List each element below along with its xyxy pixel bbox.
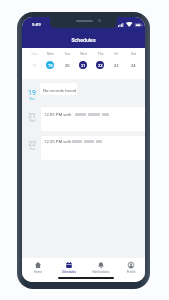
staticText: 19 — [48, 63, 53, 68]
button[interactable]: Wed — [75, 49, 92, 77]
button[interactable]: Notifications — [86, 258, 116, 282]
staticText: 19 — [28, 89, 36, 97]
staticText: 18 — [32, 63, 37, 68]
button[interactable]: Profile — [116, 258, 145, 282]
staticText: 23 — [114, 63, 119, 68]
staticText: 12:05 PM with — [44, 112, 72, 117]
button[interactable] — [41, 107, 145, 131]
staticText: Home — [23, 270, 53, 274]
staticText: 12:35 PM with — [44, 139, 72, 144]
button[interactable]: Sat — [125, 49, 142, 77]
staticText: Wed — [75, 52, 92, 56]
button[interactable]: Mon — [42, 49, 59, 77]
staticText: No records found — [43, 88, 77, 93]
staticText: Notifications — [86, 270, 116, 274]
staticText: 21 — [28, 112, 36, 120]
staticText: 22 — [98, 63, 103, 68]
staticText: Sun — [26, 52, 43, 56]
staticText: Mon — [29, 97, 36, 101]
button[interactable]: Tue — [59, 49, 76, 77]
staticText: Thu — [92, 52, 109, 56]
button[interactable]: Home — [23, 258, 53, 282]
staticText: Profile — [116, 270, 145, 274]
staticText: Schedules — [22, 37, 145, 43]
staticText: Mon — [42, 52, 59, 56]
staticText: 20 — [65, 63, 70, 68]
staticText: 5:09 — [32, 22, 41, 27]
staticText: Fri — [108, 52, 125, 56]
staticText: Schedules — [54, 270, 84, 274]
button[interactable]: Schedules — [54, 258, 84, 282]
staticText: Wed — [29, 119, 36, 123]
button[interactable]: Thu — [92, 49, 109, 77]
staticText: 24 — [131, 63, 136, 68]
staticText: Tue — [59, 52, 76, 56]
staticText: 21 — [81, 63, 86, 68]
staticText: Thu — [29, 147, 35, 151]
button[interactable] — [41, 136, 145, 160]
staticText: Sat — [125, 52, 142, 56]
button[interactable]: Sun — [26, 49, 43, 77]
button[interactable] — [40, 83, 77, 95]
staticText: 22 — [28, 140, 36, 148]
button[interactable]: Fri — [108, 49, 125, 77]
